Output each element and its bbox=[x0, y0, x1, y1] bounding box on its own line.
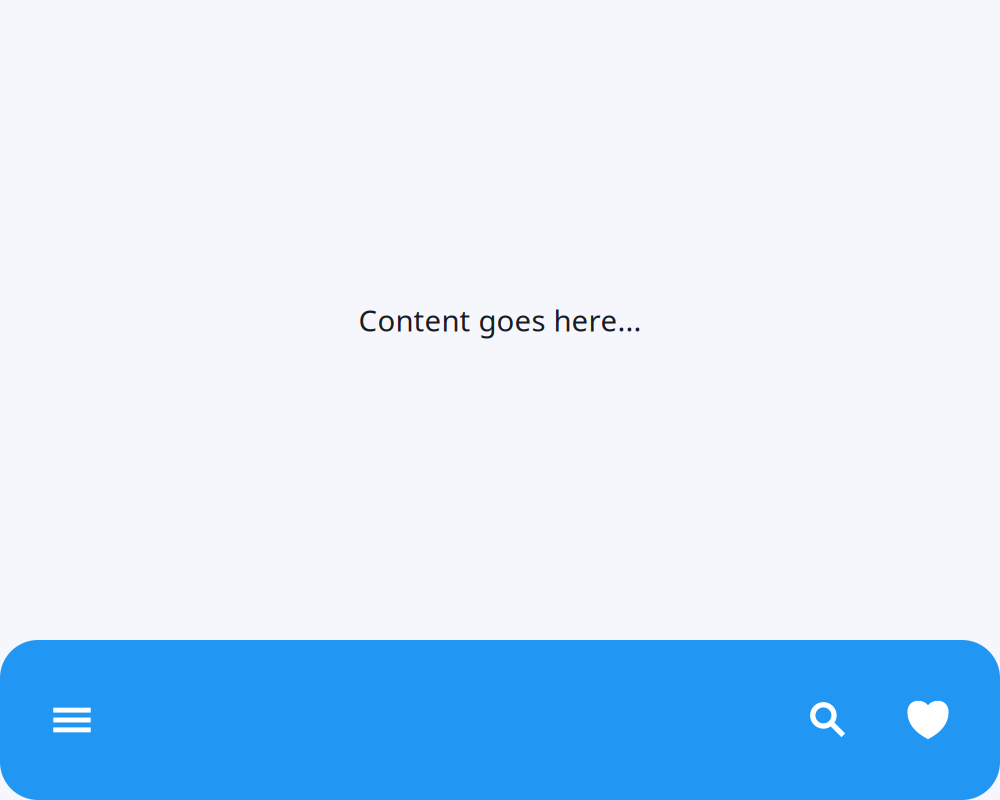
button[interactable]: Menu bbox=[43, 640, 101, 800]
button[interactable]: Favourites bbox=[899, 640, 957, 800]
button[interactable]: Search bbox=[799, 640, 857, 800]
staticText: Content goes here... bbox=[358, 300, 641, 339]
